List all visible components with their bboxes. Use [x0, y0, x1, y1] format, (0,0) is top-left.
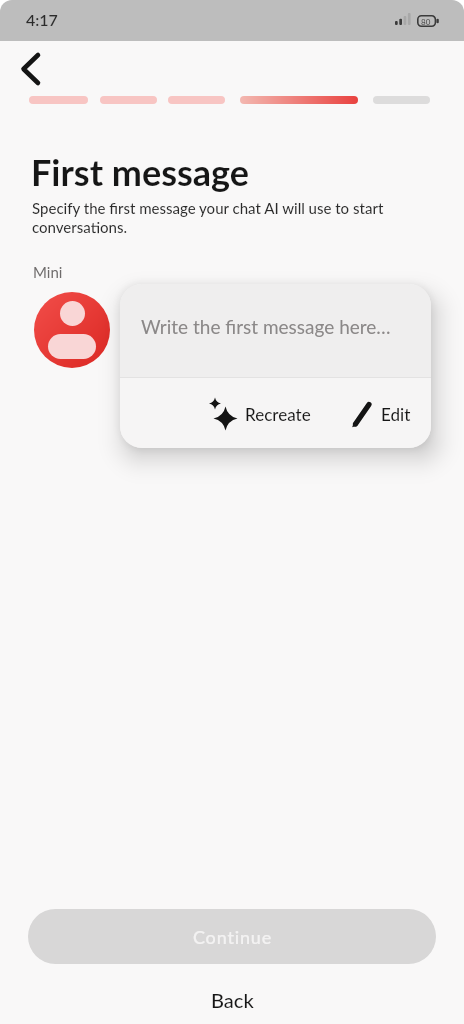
- staticText: Edit: [381, 404, 411, 424]
- button[interactable]: Back: [199, 986, 266, 1014]
- staticText: Write the first message here…: [141, 315, 391, 338]
- button[interactable]: Recreate: [209, 397, 311, 430]
- staticText: Continue: [193, 926, 272, 948]
- staticText: 80: [421, 17, 431, 27]
- button[interactable]: [12, 49, 50, 87]
- staticText: 4:17: [26, 10, 58, 29]
- button[interactable]: Edit: [351, 400, 411, 428]
- button[interactable]: Write the first message here…: [120, 284, 431, 377]
- staticText: Specify the first message your chat AI w…: [32, 199, 384, 236]
- staticText: Recreate: [245, 404, 311, 424]
- staticText: Mini: [33, 263, 63, 281]
- staticText: Back: [211, 988, 254, 1012]
- staticText: First message: [31, 150, 250, 193]
- button[interactable]: Continue: [28, 909, 436, 964]
